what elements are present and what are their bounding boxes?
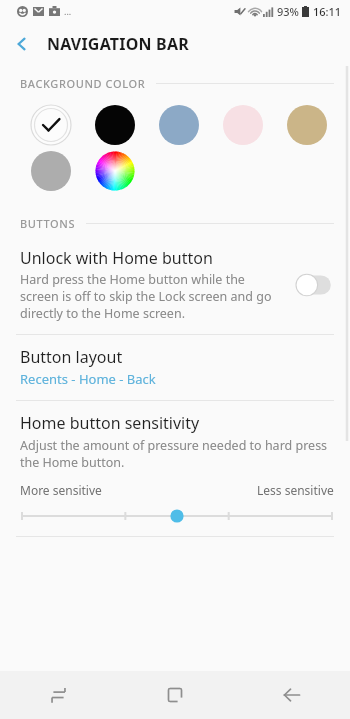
button[interactable]: Back	[0, 22, 44, 66]
button[interactable]: Recents	[0, 671, 116, 719]
button[interactable]: Button layout	[0, 335, 350, 400]
staticText: 93%	[277, 4, 299, 19]
staticText: NAVIGATION BAR	[47, 33, 189, 55]
staticText: More sensitive	[20, 482, 102, 498]
button[interactable]: Unlock with Home button toggle, off	[294, 272, 334, 298]
button[interactable]: Tan background color	[287, 105, 327, 145]
staticText: Less sensitive	[257, 482, 334, 498]
button[interactable]: Gray background color	[31, 151, 71, 191]
staticText: Recents - Home - Back	[20, 370, 156, 388]
button[interactable]: Black background color	[95, 105, 135, 145]
staticText: BUTTONS	[20, 216, 76, 231]
staticText: Adjust the amount of pressure needed to …	[20, 437, 334, 471]
staticText: Home button sensitivity	[20, 412, 200, 434]
staticText: Hard press the Home button while the scr…	[20, 271, 284, 322]
staticText: Unlock with Home button	[20, 247, 213, 269]
button[interactable]: Blue background color	[159, 105, 199, 145]
staticText: ...	[64, 5, 72, 17]
staticText: BACKGROUND COLOR	[20, 76, 146, 91]
button[interactable]: Unlock with Home button	[0, 237, 350, 334]
button[interactable]: Pink background color	[223, 105, 263, 145]
button[interactable]: White background color, selected	[30, 104, 72, 146]
button[interactable]: Home	[116, 671, 233, 719]
button[interactable]: Home button sensitivity slider	[20, 506, 334, 526]
button[interactable]: Back	[233, 671, 350, 719]
button[interactable]: Custom background color	[94, 150, 136, 192]
staticText: Button layout	[20, 346, 123, 368]
staticText: 16:11	[313, 4, 342, 19]
